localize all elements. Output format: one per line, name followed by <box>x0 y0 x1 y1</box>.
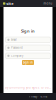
button[interactable]: Privacy · Terms <box>29 95 47 98</box>
staticText: Sign in <box>23 61 33 64</box>
button[interactable]: Password <box>6 45 50 51</box>
button[interactable]: Email <box>6 37 50 43</box>
button[interactable]: site <box>3 1 13 6</box>
staticText: Password <box>11 46 23 49</box>
staticText: By continuing you agree to our Terms and… <box>5 86 51 89</box>
staticText: menu <box>43 2 52 5</box>
staticText: Privacy · Terms <box>29 95 47 98</box>
staticText: Sign in <box>21 28 35 34</box>
staticText: site <box>6 1 13 6</box>
staticText: Company <box>11 54 23 57</box>
button[interactable]: Sign in <box>22 60 34 65</box>
button[interactable]: Company <box>6 53 50 59</box>
button[interactable]: menu <box>43 2 53 5</box>
staticText: Email <box>11 38 17 41</box>
